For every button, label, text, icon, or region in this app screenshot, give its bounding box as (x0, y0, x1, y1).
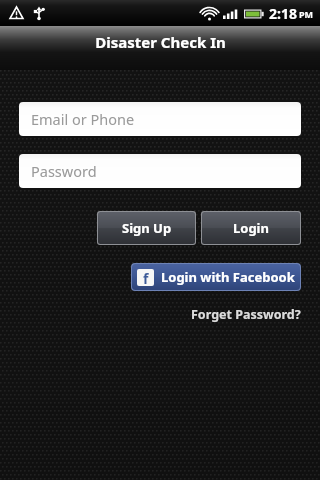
staticText: Disaster Check In (95, 32, 226, 52)
staticText: Email or Phone (31, 109, 135, 129)
staticText: Login with Facebook (161, 268, 295, 286)
button[interactable]: f (132, 264, 300, 290)
staticText: Login (233, 219, 269, 237)
button[interactable]: Email or Phone (19, 102, 301, 136)
staticText: Password (31, 161, 97, 181)
staticText: 2:18 (269, 4, 297, 23)
staticText: Sign Up (122, 219, 172, 237)
button[interactable]: Login (202, 212, 300, 244)
staticText: Forget Password? (191, 306, 301, 323)
staticText: f (143, 269, 149, 286)
staticText: PM (299, 8, 314, 20)
button[interactable]: Forget Password? (189, 304, 303, 325)
button[interactable]: Sign Up (98, 212, 195, 244)
button[interactable]: Password (19, 154, 301, 188)
